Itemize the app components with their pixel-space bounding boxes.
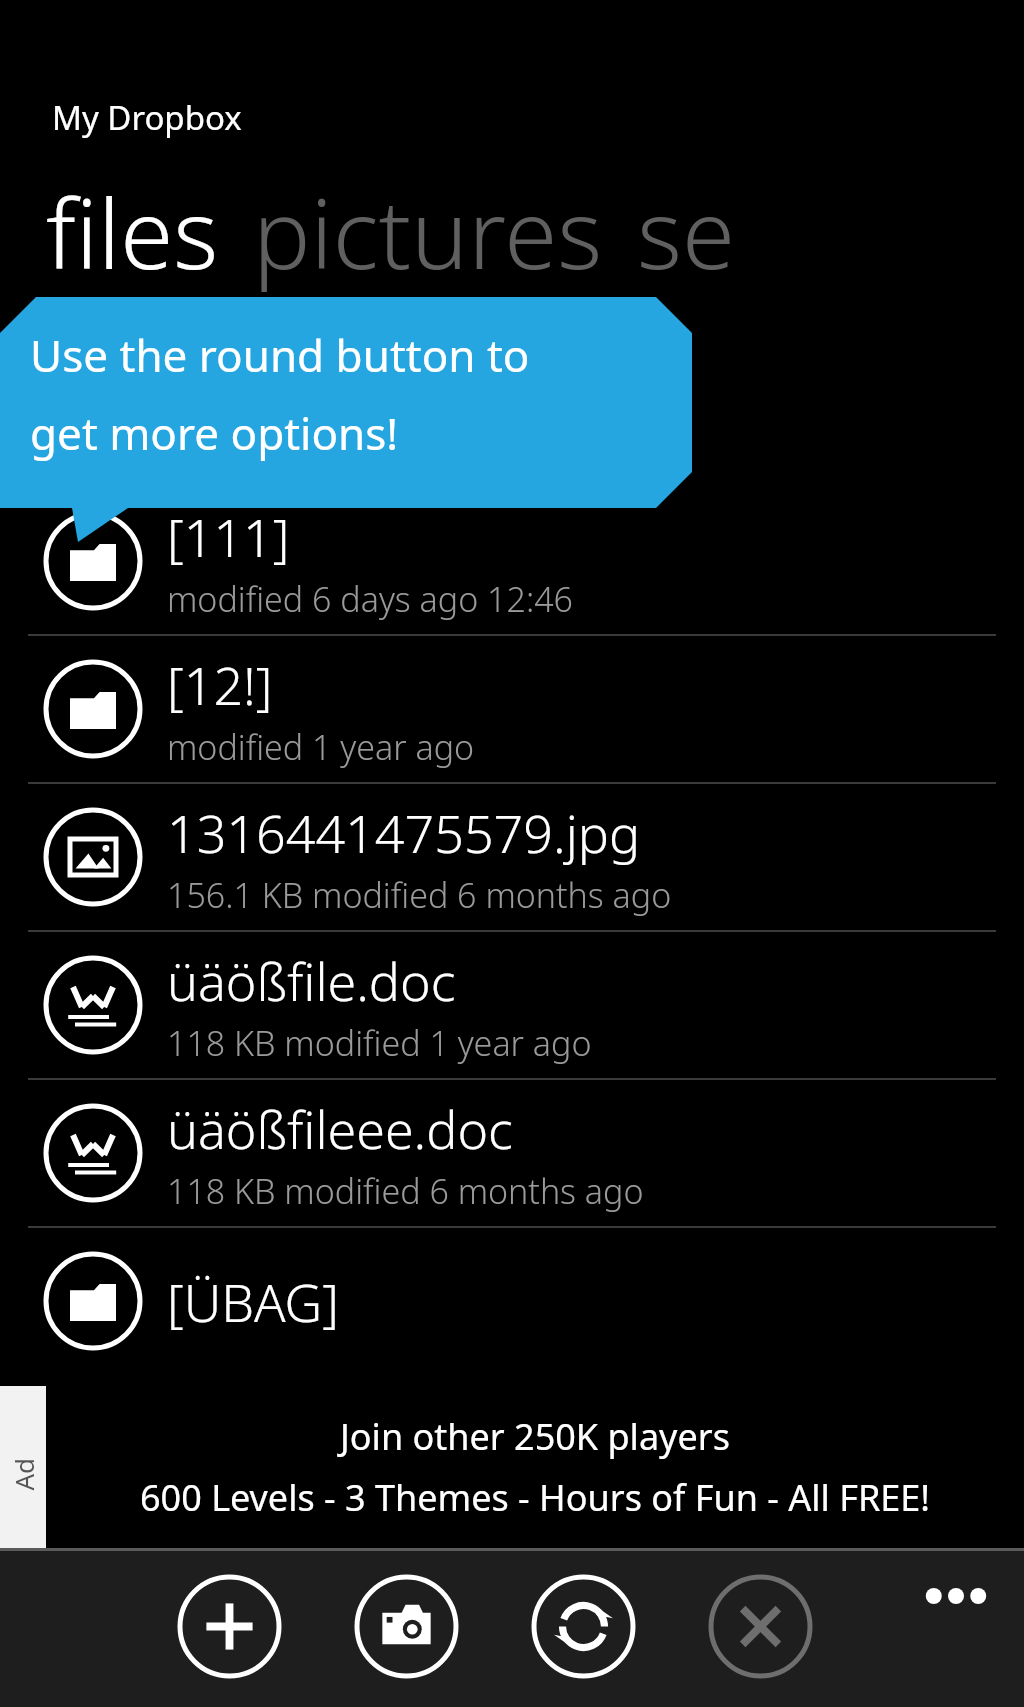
button[interactable]: 1316441475579.jpg [0, 784, 1024, 930]
button[interactable]: files [46, 166, 219, 297]
staticText: modified 1 year ago [167, 724, 475, 770]
staticText: Use the round button to [30, 325, 530, 385]
staticText: 600 Levels - 3 Themes - Hours of Fun - A… [140, 1473, 930, 1522]
staticText: 1316441475579.jpg [167, 797, 641, 868]
button[interactable]: Camera [354, 1574, 459, 1679]
staticText: [ÜBAG] [167, 1266, 339, 1337]
button[interactable]: üäößfile.doc [0, 932, 1024, 1078]
button[interactable]: [ÜBAG] [0, 1228, 1024, 1374]
button[interactable]: üäößfileee.doc [0, 1080, 1024, 1226]
button[interactable]: More options [910, 1566, 1002, 1626]
staticText: AdDuplex [5, 1444, 40, 1490]
staticText: Join other 250K players [340, 1412, 730, 1461]
staticText: modified 6 days ago 12:46 [167, 576, 574, 622]
button[interactable]: Add [177, 1574, 282, 1679]
staticText: My Dropbox [52, 95, 242, 140]
button[interactable]: Cancel [708, 1574, 813, 1679]
staticText: üäößfileee.doc [167, 1093, 513, 1164]
button[interactable]: se [637, 166, 735, 297]
staticText: get more options! [30, 403, 399, 463]
button[interactable]: pictures [253, 166, 603, 297]
staticText: 156.1 KB modified 6 months ago [167, 872, 672, 918]
staticText: [12!] [167, 649, 273, 720]
button[interactable]: [111] [0, 488, 1024, 634]
staticText: [111] [167, 501, 290, 572]
button[interactable]: Sync [531, 1574, 636, 1679]
staticText: 118 KB modified 1 year ago [167, 1020, 592, 1066]
button[interactable]: [12!] [0, 636, 1024, 782]
staticText: 118 KB modified 6 months ago [167, 1168, 644, 1214]
staticText: üäößfile.doc [167, 945, 456, 1016]
button[interactable]: AdDuplex [0, 1386, 1024, 1548]
